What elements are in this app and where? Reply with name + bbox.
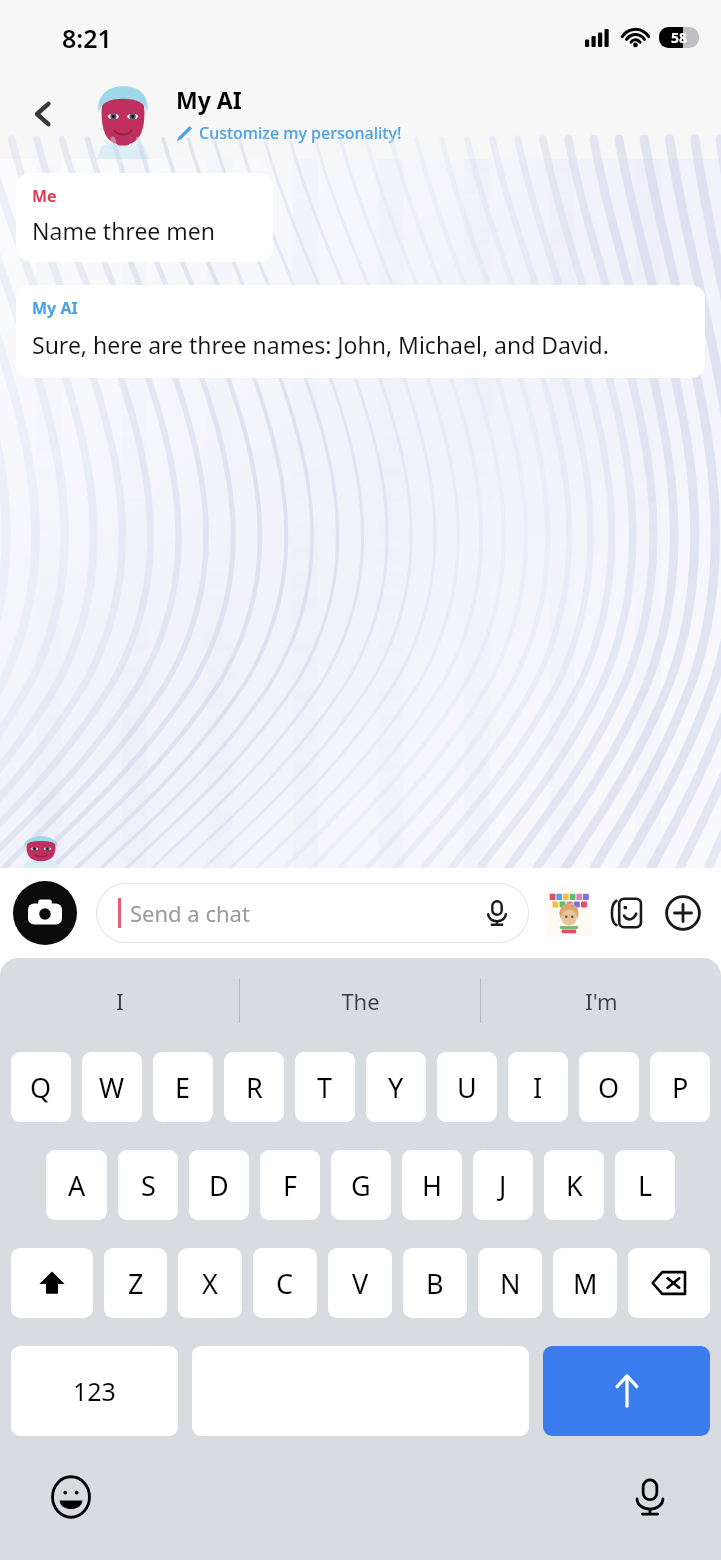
staticText: Customize my personality! xyxy=(199,122,402,144)
button[interactable]: I'm xyxy=(481,958,721,1044)
staticText: U xyxy=(457,1069,477,1106)
button[interactable]: V xyxy=(328,1248,392,1318)
staticText: V xyxy=(352,1265,369,1302)
button[interactable]: Media gallery xyxy=(599,886,653,940)
button[interactable]: O xyxy=(579,1052,639,1122)
staticText: 58 xyxy=(671,28,688,47)
staticText: T xyxy=(317,1069,333,1106)
button[interactable]: Send a chat xyxy=(96,883,529,943)
button[interactable]: Send xyxy=(543,1346,710,1436)
staticText: Me xyxy=(32,185,57,207)
button[interactable]: The xyxy=(240,958,480,1044)
button[interactable]: X xyxy=(178,1248,242,1318)
staticText: O xyxy=(598,1069,620,1106)
button[interactable]: J xyxy=(473,1150,533,1220)
button[interactable]: Voice message xyxy=(475,891,519,935)
staticText: J xyxy=(499,1167,507,1204)
staticText: Z xyxy=(128,1265,144,1302)
button[interactable]: Z xyxy=(104,1248,167,1318)
button[interactable]: T xyxy=(295,1052,355,1122)
button[interactable]: Camera xyxy=(13,881,77,945)
staticText: R xyxy=(246,1069,263,1106)
staticText: X xyxy=(202,1265,218,1302)
button[interactable]: My AI xyxy=(16,285,705,378)
button[interactable] xyxy=(86,87,160,161)
button[interactable]: Back xyxy=(0,69,86,159)
button[interactable]: More options xyxy=(655,885,711,941)
button[interactable]: Dictation xyxy=(619,1466,681,1528)
staticText: B xyxy=(426,1265,444,1302)
staticText: H xyxy=(422,1167,443,1204)
button[interactable]: Sticker xyxy=(541,885,597,941)
button[interactable]: F xyxy=(260,1150,320,1220)
button[interactable]: S xyxy=(118,1150,178,1220)
button[interactable]: R xyxy=(224,1052,284,1122)
button[interactable]: Y xyxy=(366,1052,426,1122)
staticText: A xyxy=(68,1167,86,1204)
staticText: 8:21 xyxy=(62,21,112,55)
staticText: Name three men xyxy=(32,215,216,246)
staticText: Sure, here are three names: John, Michae… xyxy=(32,329,609,360)
button[interactable]: Emoji xyxy=(40,1466,102,1528)
button[interactable]: W xyxy=(82,1052,142,1122)
button[interactable]: Me xyxy=(16,173,273,262)
button[interactable]: I xyxy=(508,1052,568,1122)
staticText: D xyxy=(209,1167,229,1204)
button[interactable]: D xyxy=(189,1150,249,1220)
staticText: E xyxy=(175,1069,191,1106)
staticText: K xyxy=(566,1167,583,1204)
staticText: S xyxy=(141,1167,156,1204)
staticText: My AI xyxy=(176,84,242,115)
staticText: P xyxy=(672,1069,689,1106)
button[interactable]: C xyxy=(253,1248,317,1318)
button[interactable]: H xyxy=(402,1150,462,1220)
button[interactable]: M xyxy=(553,1248,617,1318)
button[interactable]: Q xyxy=(11,1052,71,1122)
staticText: Y xyxy=(388,1069,404,1106)
button[interactable]: P xyxy=(650,1052,710,1122)
staticText: I xyxy=(116,986,124,1016)
staticText: M xyxy=(573,1265,598,1302)
button[interactable]: G xyxy=(331,1150,391,1220)
staticText: The xyxy=(341,986,380,1016)
button[interactable]: Backspace xyxy=(628,1248,710,1318)
button[interactable]: I xyxy=(0,958,239,1044)
staticText: Q xyxy=(30,1069,52,1106)
button[interactable]: N xyxy=(478,1248,542,1318)
button[interactable]: L xyxy=(615,1150,675,1220)
staticText: 123 xyxy=(73,1374,116,1408)
button[interactable]: Shift xyxy=(11,1248,93,1318)
staticText: G xyxy=(351,1167,371,1204)
staticText: N xyxy=(500,1265,521,1302)
staticText: L xyxy=(638,1167,653,1204)
staticText: I'm xyxy=(585,986,618,1016)
button[interactable]: U xyxy=(437,1052,497,1122)
staticText: My AI xyxy=(32,297,78,319)
staticText: C xyxy=(276,1265,294,1302)
button[interactable]: E xyxy=(153,1052,213,1122)
button[interactable]: A xyxy=(46,1150,107,1220)
staticText: I xyxy=(533,1069,543,1106)
button[interactable]: My AI xyxy=(176,84,703,144)
button[interactable]: B xyxy=(403,1248,467,1318)
staticText: W xyxy=(99,1069,125,1106)
staticText: F xyxy=(283,1167,298,1204)
staticText: Send a chat xyxy=(130,898,475,928)
button[interactable]: K xyxy=(544,1150,604,1220)
button[interactable]: 123 xyxy=(11,1346,178,1436)
